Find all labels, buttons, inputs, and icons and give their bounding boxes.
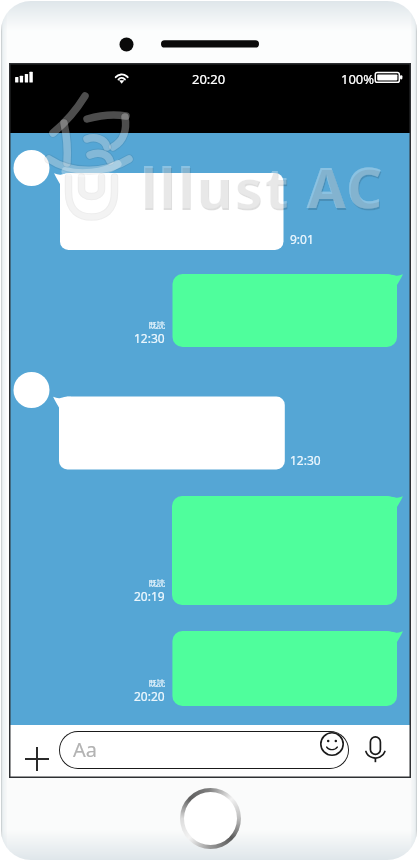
staticText: 既読 <box>149 578 165 588</box>
staticText: 20:19 <box>134 588 165 604</box>
button[interactable]: Aa <box>59 731 349 769</box>
staticText: 9:01 <box>290 231 314 247</box>
staticText: 20:20 <box>134 688 165 704</box>
staticText: lllust AC <box>141 150 386 226</box>
staticText: 既読 <box>149 320 165 330</box>
button[interactable]: Emoji <box>316 728 348 760</box>
staticText: 20:20 <box>192 70 226 88</box>
button[interactable]: Add attachment <box>21 743 53 775</box>
staticText: 12:30 <box>290 452 321 468</box>
staticText: 100% <box>341 70 375 88</box>
button[interactable]: Voice message <box>358 725 390 757</box>
staticText: Aa <box>73 736 97 763</box>
staticText: lllust AC <box>140 148 385 224</box>
staticText: 既読 <box>149 678 165 688</box>
staticText: 12:30 <box>134 330 165 346</box>
